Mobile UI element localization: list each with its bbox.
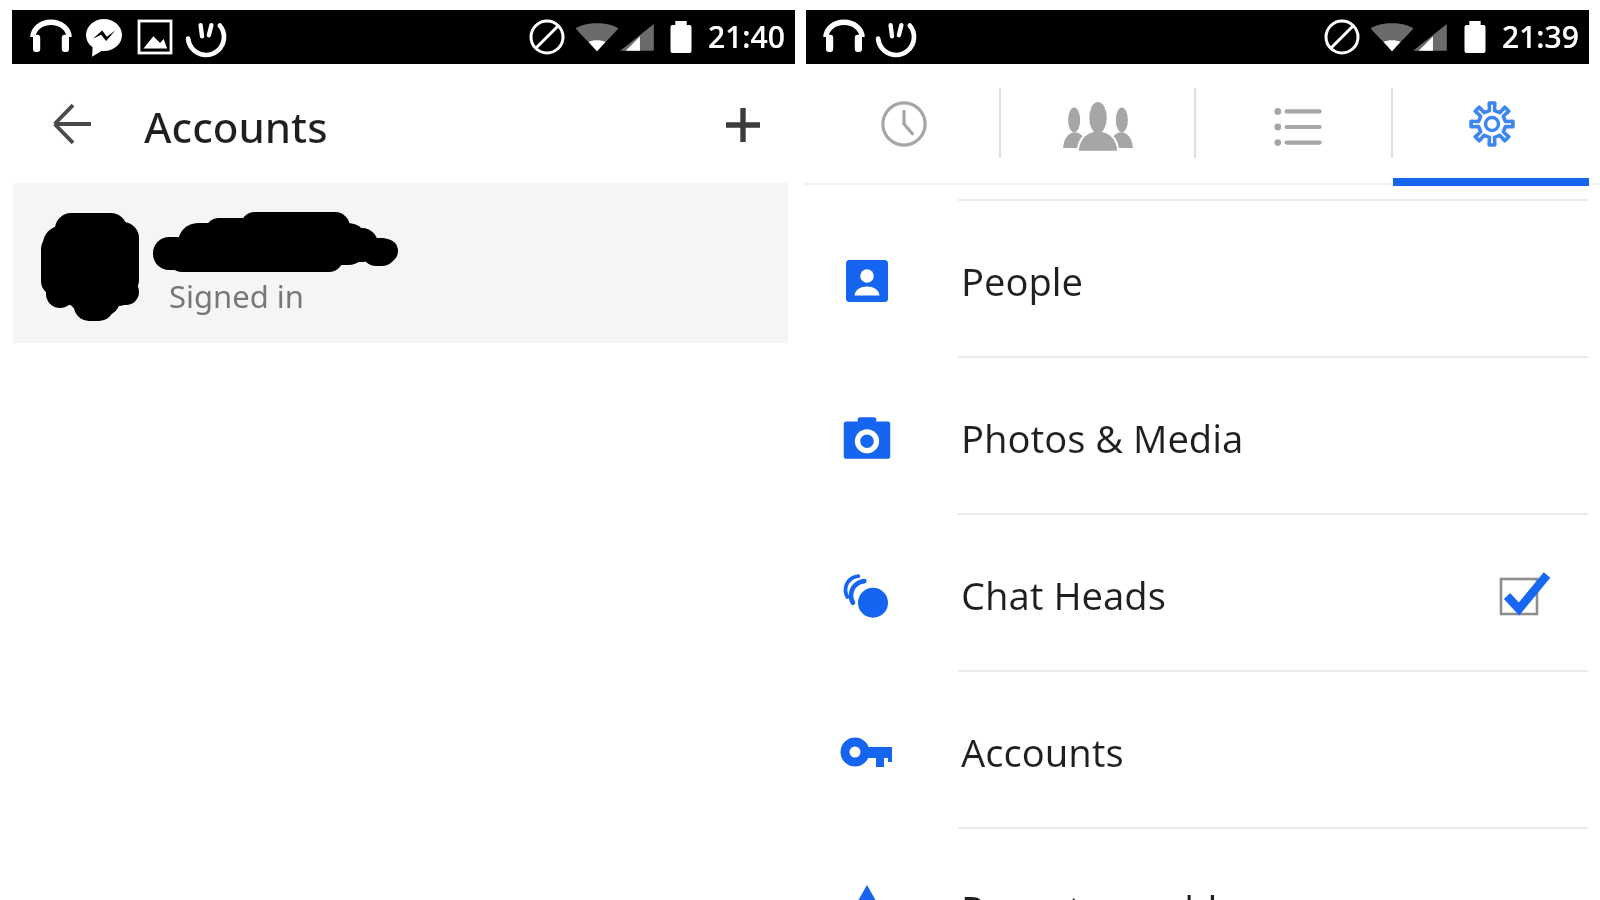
staticText: People bbox=[961, 255, 1084, 307]
staticText: Signed in bbox=[169, 275, 305, 317]
button[interactable]: Recent bbox=[803, 64, 1000, 188]
staticText: 21:40 bbox=[708, 16, 785, 57]
staticText: Accounts bbox=[961, 726, 1124, 778]
staticText: 21:39 bbox=[1502, 16, 1579, 57]
button[interactable]: Report a problem bbox=[803, 829, 1600, 900]
button[interactable]: Accounts bbox=[803, 672, 1600, 829]
button[interactable]: Photos & Media bbox=[803, 358, 1600, 515]
button[interactable]: Signed in bbox=[13, 183, 788, 343]
button[interactable]: Add account bbox=[708, 90, 778, 160]
button[interactable]: Chat Heads bbox=[803, 515, 1600, 672]
button[interactable]: Settings bbox=[1392, 64, 1589, 188]
staticText: Report a problem bbox=[961, 883, 1275, 900]
staticText: Photos & Media bbox=[961, 412, 1244, 464]
button[interactable]: Navigate up bbox=[38, 89, 108, 159]
button[interactable]: People bbox=[803, 201, 1600, 358]
button[interactable]: Threads bbox=[1195, 64, 1392, 188]
staticText: Accounts bbox=[144, 98, 328, 155]
staticText: Chat Heads bbox=[961, 569, 1166, 621]
button[interactable]: People bbox=[1000, 64, 1195, 188]
button[interactable]: Toggle Chat Heads bbox=[1495, 571, 1551, 627]
